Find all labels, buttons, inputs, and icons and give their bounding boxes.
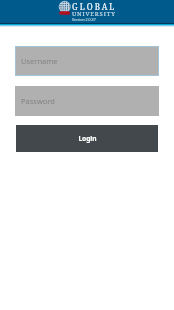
button[interactable]: Username <box>15 46 159 76</box>
other: Global University logo <box>56 1 72 15</box>
staticText: Password <box>21 96 55 106</box>
staticText: GLOBAL <box>72 1 117 12</box>
staticText: Username <box>21 56 58 66</box>
staticText: UNIVERSITY <box>72 10 116 18</box>
staticText: Version 2.0.37 <box>72 17 96 22</box>
button[interactable]: Password <box>15 86 159 116</box>
button[interactable]: Login <box>16 125 158 152</box>
staticText: Login <box>78 134 97 143</box>
